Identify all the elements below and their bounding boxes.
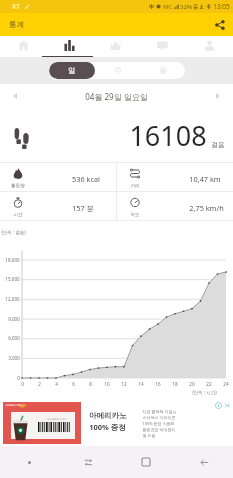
staticText: 18,000 xyxy=(5,257,20,263)
staticText: 3,000 xyxy=(8,355,20,361)
staticText: 통계 xyxy=(9,20,24,29)
staticText: 활동량 xyxy=(11,183,25,189)
staticText: 월 xyxy=(159,66,167,75)
staticText: 2 xyxy=(38,381,41,387)
staticText: 8 xyxy=(89,381,92,387)
staticText: 100% 증정 xyxy=(89,422,126,432)
staticText: 거리 xyxy=(130,183,140,189)
staticText: 원 드림 xyxy=(142,433,156,438)
staticText: 32% xyxy=(180,3,192,11)
button[interactable]: More xyxy=(0,446,59,478)
staticText: 시간 xyxy=(13,212,23,218)
button[interactable]: Statistics xyxy=(46,36,92,57)
staticText: 14 xyxy=(138,381,144,387)
staticText: 04월 29일 일요일 xyxy=(85,91,148,102)
button[interactable]: Next day xyxy=(209,87,227,105)
staticText: KT xyxy=(12,2,20,11)
staticText: 2,75 km/h xyxy=(189,203,224,213)
staticText: 스타벅스 쿠폰 xyxy=(5,403,22,407)
staticText: NFC xyxy=(163,4,172,10)
staticText: 걸음 xyxy=(211,140,225,149)
button[interactable]: Share xyxy=(207,13,233,36)
staticText: 6,000 xyxy=(8,335,20,341)
staticText: 0 xyxy=(21,381,24,387)
staticText: 주 xyxy=(114,66,122,75)
staticText: 157 분 xyxy=(72,203,94,213)
button[interactable]: Profile xyxy=(186,36,233,57)
staticText: (단위 : 시간) xyxy=(192,389,217,395)
staticText: 22 xyxy=(206,381,212,387)
staticText: 스타벅스 기프티콘 xyxy=(142,415,176,420)
staticText: 20 xyxy=(189,381,195,387)
staticText: 10,47 km xyxy=(189,174,221,184)
staticText: 100% 증정 이벤트 xyxy=(142,421,175,426)
staticText: 16 xyxy=(155,381,161,387)
staticText: 15,000 xyxy=(5,276,20,282)
staticText: 16108 xyxy=(129,117,207,154)
staticText: 아메리카노 xyxy=(89,411,127,420)
button[interactable]: Ad info xyxy=(215,402,222,409)
button[interactable]: Previous day xyxy=(6,87,24,105)
staticText: 6 xyxy=(72,381,75,387)
staticText: 12 xyxy=(121,381,127,387)
button[interactable]: 활동량 xyxy=(0,163,116,191)
staticText: 0 xyxy=(17,375,20,381)
staticText: 18 xyxy=(172,381,178,387)
staticText: 지금 클릭해 가입시 xyxy=(142,409,177,414)
button[interactable]: Home xyxy=(0,36,46,57)
staticText: 12,000 xyxy=(5,296,20,302)
staticText: 4 xyxy=(55,381,58,387)
button[interactable]: 속도 xyxy=(117,192,233,220)
staticText: (단위 : 걸음) xyxy=(1,229,26,235)
button[interactable]: 거리 xyxy=(117,163,233,191)
staticText: 속도 xyxy=(130,212,140,218)
button[interactable]: Recents xyxy=(59,446,117,478)
staticText: 13:05 xyxy=(213,2,230,11)
staticText: 지금 클릭하고 받기 xyxy=(47,418,67,421)
button[interactable]: 시간 xyxy=(0,192,116,220)
staticText: 발송건은 비대면지 xyxy=(142,427,176,432)
button[interactable]: Back xyxy=(175,446,233,478)
button[interactable]: Home xyxy=(117,446,175,478)
staticText: 536 kcal xyxy=(72,174,100,184)
button[interactable]: Chat xyxy=(139,36,186,57)
button[interactable]: Close ad xyxy=(224,402,231,409)
staticText: 일 xyxy=(68,66,76,75)
button[interactable]: Rank xyxy=(92,36,139,57)
staticText: 10 xyxy=(104,381,110,387)
button[interactable]: 월 xyxy=(140,62,185,79)
button[interactable]: 스타벅스 쿠폰 xyxy=(0,401,233,446)
staticText: 24 xyxy=(223,381,229,387)
staticText: 9,000 xyxy=(8,316,20,322)
button[interactable]: 일 xyxy=(49,62,95,79)
